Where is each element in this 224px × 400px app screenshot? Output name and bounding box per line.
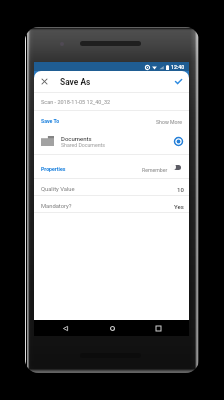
button[interactable]: Close [34,71,55,92]
staticText: 12:40 [171,64,185,70]
staticText: Documents [61,135,92,142]
button[interactable]: Remember [142,164,182,170]
button[interactable]: Recents [142,320,174,336]
staticText: Shared Documents [61,142,105,148]
button[interactable]: Home [96,320,128,336]
staticText: Scan - 2018-11-05 12_40_32 [41,99,111,105]
button[interactable]: Mandatory? [34,196,189,212]
staticText: Properties [41,166,66,172]
staticText: Mandatory? [41,203,72,210]
staticText: 10 [177,186,184,193]
button[interactable]: Back [49,320,81,336]
staticText: Quality Value [41,186,75,193]
staticText: Remember [142,167,168,173]
button[interactable]: Show More [156,119,183,125]
staticText: Save As [60,77,91,87]
button[interactable]: Documents [34,128,189,154]
staticText: Save To [41,118,60,124]
staticText: Yes [174,203,184,210]
button[interactable]: Confirm [167,71,189,92]
button[interactable]: Quality Value [34,179,189,195]
